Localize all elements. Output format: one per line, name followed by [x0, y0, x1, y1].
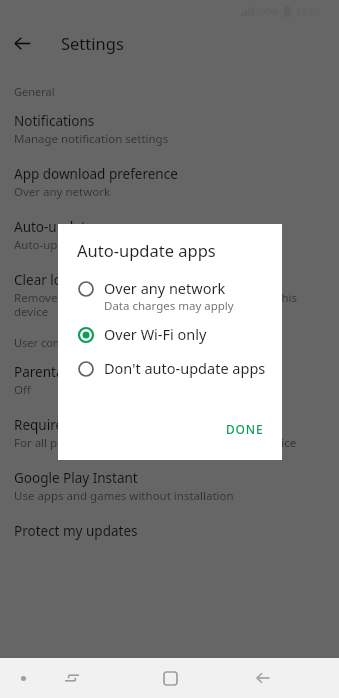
staticText: Over any network [14, 184, 111, 200]
staticText: App download preference [14, 165, 178, 183]
button[interactable]: Don't auto-update apps [58, 355, 282, 385]
staticText: Off [14, 382, 31, 398]
staticText: Notifications [14, 112, 95, 130]
staticText: Don't auto-update apps [104, 358, 266, 378]
staticText: Parental controls [14, 363, 122, 381]
button[interactable]: Notifications [0, 103, 339, 156]
button[interactable]: App download preference [0, 156, 339, 209]
staticText: General [14, 84, 55, 99]
button[interactable]: Google Play Instant [0, 460, 339, 513]
button[interactable]: Assistant [8, 663, 38, 693]
staticText: Settings [61, 32, 124, 54]
staticText: Over any network [104, 278, 226, 298]
button[interactable]: Clear local search history [0, 262, 339, 329]
staticText: Over Wi-Fi only [104, 324, 207, 344]
staticText: Protect my updates [14, 522, 138, 540]
staticText: Remove all the searches you have perform… [14, 290, 327, 320]
staticText: User controls [14, 335, 83, 350]
staticText: Require authentication for purchases [14, 416, 250, 434]
button[interactable]: Navigate up [0, 26, 44, 60]
staticText: Auto-update apps [77, 239, 216, 261]
button[interactable]: Over Wi-Fi only [58, 321, 282, 351]
button[interactable]: DONE [208, 412, 282, 446]
button[interactable]: Auto-update apps [0, 209, 339, 262]
staticText: Google Play Instant [14, 469, 138, 487]
button[interactable]: Recents [57, 663, 87, 693]
button[interactable]: Home [155, 663, 185, 693]
staticText: For all purchases through Google Play on… [14, 435, 297, 451]
button[interactable]: Back [248, 663, 278, 693]
staticText: Auto-update apps over Wi-Fi only [14, 237, 193, 253]
staticText: Use apps and games without installation [14, 488, 234, 504]
staticText: DONE [226, 421, 264, 437]
button[interactable]: Protect my updates [0, 513, 339, 549]
button[interactable]: Over any network [58, 275, 282, 321]
staticText: Clear local search history [14, 271, 173, 289]
button[interactable]: Parental controls [0, 354, 339, 407]
staticText: Manage notification settings [14, 131, 169, 147]
staticText: Data charges may apply [104, 298, 234, 314]
staticText: Auto-update apps [14, 218, 128, 236]
button[interactable]: Require authentication for purchases [0, 407, 339, 460]
